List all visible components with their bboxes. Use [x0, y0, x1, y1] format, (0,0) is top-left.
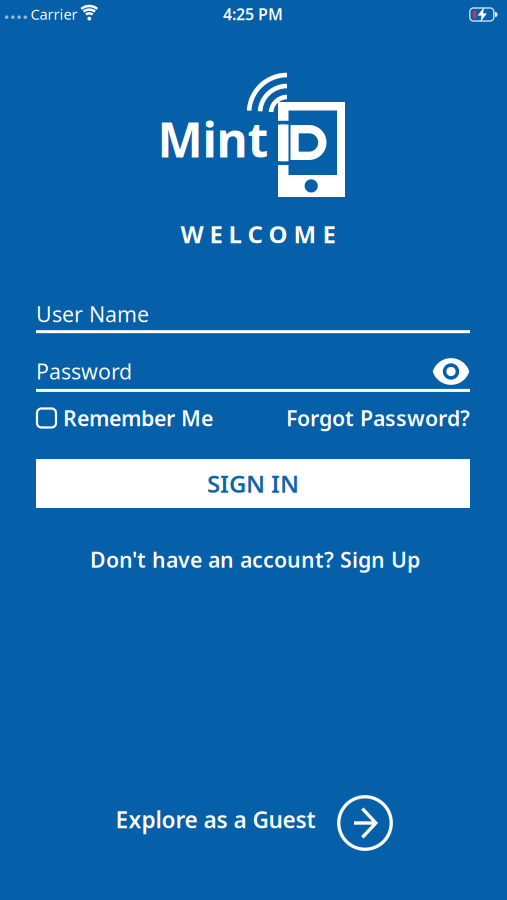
button[interactable]: SIGN IN: [36, 459, 470, 508]
staticText: Carrier: [30, 4, 77, 24]
staticText: Forgot Password?: [286, 404, 470, 432]
staticText: Mint: [157, 107, 268, 171]
button[interactable]: Password: [36, 357, 470, 392]
staticText: SIGN IN: [207, 468, 299, 499]
staticText: Don't have an account? Sign Up: [90, 545, 420, 574]
button[interactable]: User Name: [36, 300, 470, 333]
staticText: WELCOME: [180, 218, 335, 250]
staticText: Explore as a Guest: [115, 804, 315, 834]
button[interactable]: Don't have an account? Sign Up: [90, 545, 420, 574]
staticText: User Name: [36, 300, 149, 328]
staticText: Password: [36, 357, 132, 385]
staticText: Remember Me: [63, 404, 213, 432]
button[interactable]: Explore as a Guest: [103, 792, 403, 854]
button[interactable]: Show password: [431, 357, 471, 385]
staticText: 4:25 PM: [223, 3, 283, 25]
button[interactable]: Forgot Password?: [36, 404, 470, 432]
button[interactable]: Remember Me: [37, 404, 471, 432]
